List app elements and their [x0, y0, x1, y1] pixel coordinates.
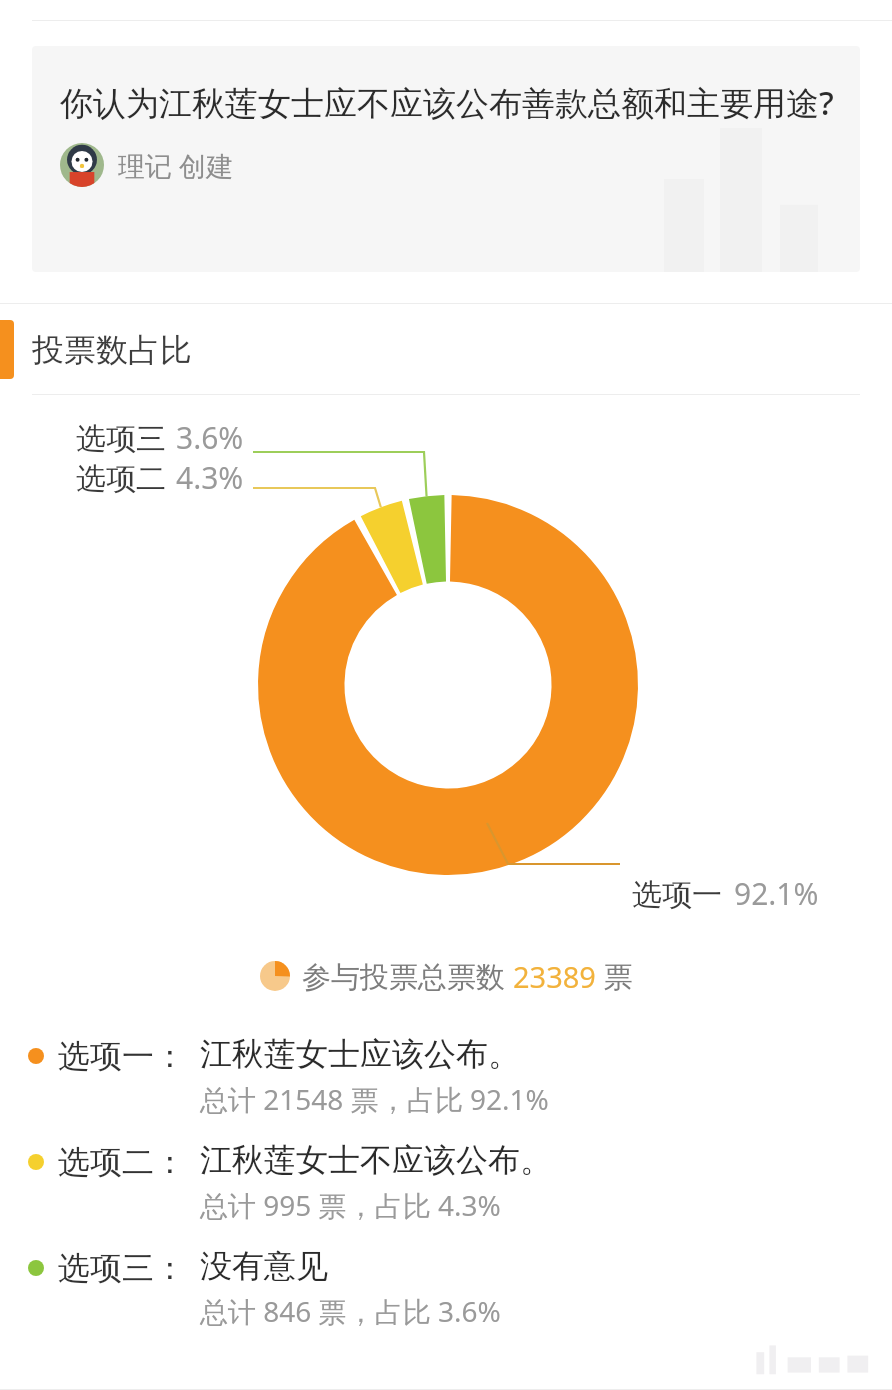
staticText: 总计 995 票，占比 4.3% [200, 1186, 501, 1224]
staticText: 92.1% [734, 873, 819, 914]
staticText: 理记 创建 [118, 147, 234, 184]
staticText: 选项三： [58, 1248, 186, 1288]
button[interactable]: 参与投票总票数 [0, 940, 892, 1012]
staticText: 总计 21548 票，占比 92.1% [200, 1080, 549, 1118]
staticText: 票 [596, 956, 633, 996]
button[interactable]: 你认为江秋莲女士应不应该公布善款总额和主要用途? [32, 46, 860, 272]
staticText: 江秋莲女士应该公布。 [200, 1034, 520, 1074]
button[interactable]: 选项三： [0, 1246, 892, 1330]
staticText: 选项二： [58, 1142, 186, 1182]
staticText: 你认为江秋莲女士应不应该公布善款总额和主要用途? [60, 80, 834, 125]
staticText: 选项三 [76, 417, 174, 458]
staticText: 投票数占比 [32, 330, 192, 370]
staticText: 选项一 [632, 873, 730, 914]
staticText: 4.3% [176, 457, 244, 498]
staticText: 23389 [513, 957, 596, 996]
staticText: 总计 846 票，占比 3.6% [200, 1292, 501, 1330]
staticText: 江秋莲女士不应该公布。 [200, 1140, 552, 1180]
staticText: 3.6% [176, 417, 244, 458]
staticText: 没有意见 [200, 1246, 328, 1286]
staticText: 选项二 [76, 457, 174, 498]
staticText: 参与投票总票数 [302, 956, 513, 996]
staticText: 选项一： [58, 1036, 186, 1076]
button[interactable]: 选项一： [0, 1034, 892, 1118]
button[interactable]: 选项二： [0, 1140, 892, 1224]
